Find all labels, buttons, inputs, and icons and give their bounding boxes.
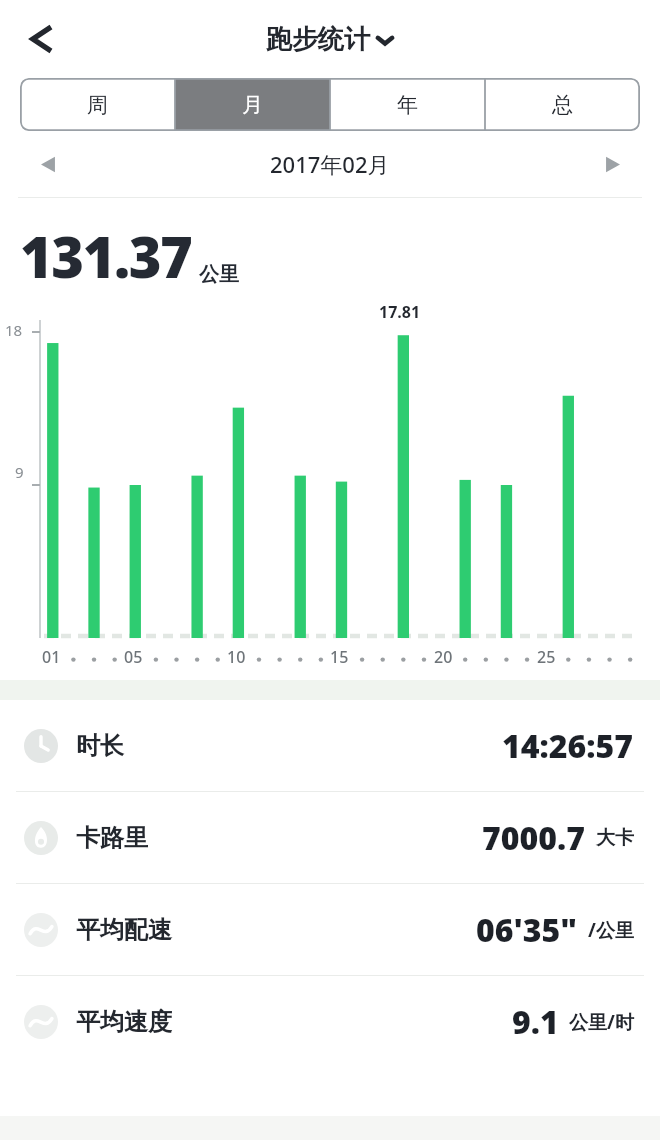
staticText: 7000.7 [482, 816, 586, 860]
staticText: 大卡 [596, 826, 634, 850]
staticText: 月 [242, 92, 263, 118]
staticText: 05 [124, 646, 143, 668]
button[interactable]: 周 [20, 78, 175, 131]
staticText: 2017年02月 [270, 149, 390, 179]
staticText: 06'35" [476, 908, 578, 952]
button[interactable]: 平均配速 [0, 884, 660, 975]
staticText: /公里 [588, 917, 634, 943]
staticText: 9 [15, 462, 24, 482]
staticText: 18 [5, 320, 23, 340]
staticText: 年 [397, 92, 418, 118]
staticText: 卡路里 [76, 823, 148, 853]
staticText: 14:26:57 [502, 724, 634, 768]
button[interactable]: 跑步统计 [266, 23, 394, 56]
staticText: 25 [537, 646, 556, 668]
staticText: 10 [227, 646, 246, 668]
staticText: 周 [87, 92, 108, 118]
button[interactable]: Next month [594, 146, 630, 182]
staticText: 平均速度 [76, 1007, 172, 1037]
button[interactable]: Back [12, 13, 64, 65]
staticText: 01 [42, 646, 61, 668]
button[interactable]: 时长 [0, 700, 660, 791]
staticText: 17.81 [379, 301, 421, 323]
button[interactable]: 平均速度 [0, 976, 660, 1067]
staticText: 15 [330, 646, 349, 668]
staticText: 公里/时 [569, 1009, 634, 1035]
staticText: 平均配速 [76, 915, 172, 945]
staticText: 总 [552, 92, 573, 118]
button[interactable]: 总 [485, 78, 640, 131]
staticText: 时长 [76, 731, 124, 761]
button[interactable]: 年 [330, 78, 485, 131]
staticText: 公里 [199, 262, 239, 287]
button[interactable]: 月 [175, 78, 330, 131]
staticText: 20 [434, 646, 453, 668]
button[interactable]: Previous month [30, 146, 66, 182]
staticText: 9.1 [512, 1000, 559, 1044]
staticText: 跑步统计 [266, 23, 370, 56]
button[interactable]: 卡路里 [0, 792, 660, 883]
staticText: 131.37 [20, 218, 192, 294]
